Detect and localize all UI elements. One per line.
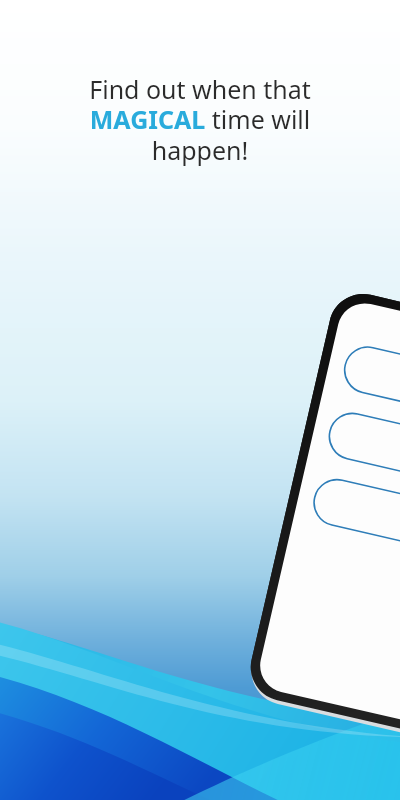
button[interactable]: Find out when that MAGICAL time will hap…	[24, 72, 376, 168]
